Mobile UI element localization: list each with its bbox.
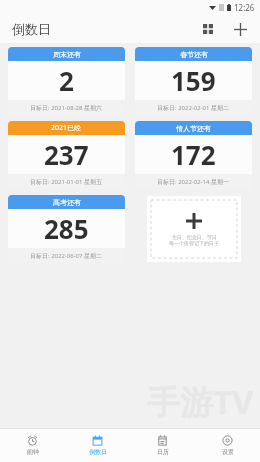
staticText: 每一个值得记下的日子 [169, 240, 219, 246]
staticText: 手游TV [147, 379, 254, 424]
button[interactable]: Add new countdown [147, 196, 241, 262]
button[interactable]: 2021已经 [8, 121, 125, 189]
button[interactable]: 闹钟 [0, 429, 65, 462]
button[interactable]: 设置 [195, 429, 260, 462]
staticText: 倒数日 [12, 21, 51, 37]
button[interactable]: 高考还有 [8, 195, 125, 263]
button[interactable]: 倒数日 [65, 429, 130, 462]
button[interactable]: Add countdown [227, 16, 253, 42]
staticText: 春节还有 [180, 50, 208, 59]
button[interactable]: 春节还有 [135, 47, 252, 115]
staticText: 237 [44, 137, 89, 172]
staticText: 高考还有 [53, 198, 81, 207]
staticText: 目标日: 2022-02-01 星期二 [157, 104, 230, 112]
button[interactable]: 周末还有 [8, 47, 125, 115]
staticText: 2 [59, 63, 74, 98]
staticText: 2021已经 [51, 123, 82, 133]
button[interactable]: 日历 [130, 429, 195, 462]
staticText: 闹钟 [27, 448, 39, 456]
button[interactable]: 情人节还有 [135, 121, 252, 189]
staticText: 目标日: 2021-08-28 星期六 [30, 104, 103, 112]
staticText: 159 [171, 63, 216, 98]
staticText: 周末还有 [53, 50, 81, 59]
staticText: 12:26 [234, 2, 255, 13]
staticText: 目标日: 2022-06-07 星期二 [30, 252, 103, 260]
staticText: 生日、纪念日、节日 [172, 234, 217, 240]
button[interactable]: Grid view [195, 16, 221, 42]
staticText: 目标日: 2022-02-14 星期一 [157, 178, 230, 186]
staticText: 日历 [157, 448, 169, 456]
staticText: 倒数日 [89, 448, 107, 456]
staticText: 设置 [222, 448, 234, 456]
staticText: 285 [44, 211, 89, 246]
staticText: 情人节还有 [176, 124, 211, 133]
staticText: 172 [171, 137, 216, 172]
staticText: 目标日: 2021-01-01 星期五 [30, 178, 103, 186]
